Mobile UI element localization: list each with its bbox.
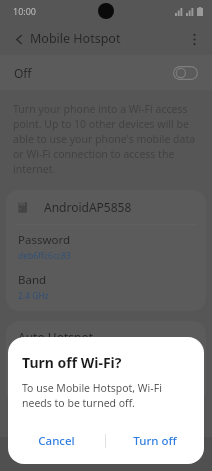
staticText: Password (18, 232, 71, 248)
staticText: Mobile Hotspot (30, 30, 121, 47)
button[interactable]: Cancel (8, 426, 105, 456)
staticText: Band (18, 272, 47, 288)
staticText: Share your phone's internet connection a… (18, 347, 158, 395)
staticText: Off (14, 65, 32, 81)
staticText: 2.4 GHz (18, 290, 49, 302)
button[interactable]: Recent apps (0, 437, 70, 471)
button[interactable]: Band (6, 265, 206, 305)
button[interactable]: Auto Hotspot (6, 321, 206, 405)
staticText: Turn off (133, 433, 177, 449)
button[interactable]: More options (181, 26, 207, 52)
button[interactable]: Off (0, 55, 212, 90)
button[interactable]: Home (70, 437, 141, 471)
button[interactable]: Back (141, 437, 212, 471)
staticText: Cancel (38, 433, 75, 449)
button[interactable]: Password (6, 225, 206, 265)
staticText: AndroidAP5858 (44, 199, 132, 215)
staticText: Turn your phone into a Wi-Fi access poin… (13, 102, 199, 176)
button[interactable]: Turn off (106, 426, 204, 456)
button[interactable]: Back (6, 26, 32, 52)
staticText: Auto Hotspot (18, 329, 94, 345)
staticText: 10:00 (13, 5, 37, 17)
staticText: Turn off Wi-Fi? (22, 353, 122, 372)
button[interactable]: AndroidAP5858 (6, 190, 206, 224)
staticText: deb6ffc6cc83 (18, 250, 71, 262)
staticText: To use Mobile Hotspot, Wi-Fi needs to be… (22, 381, 190, 410)
